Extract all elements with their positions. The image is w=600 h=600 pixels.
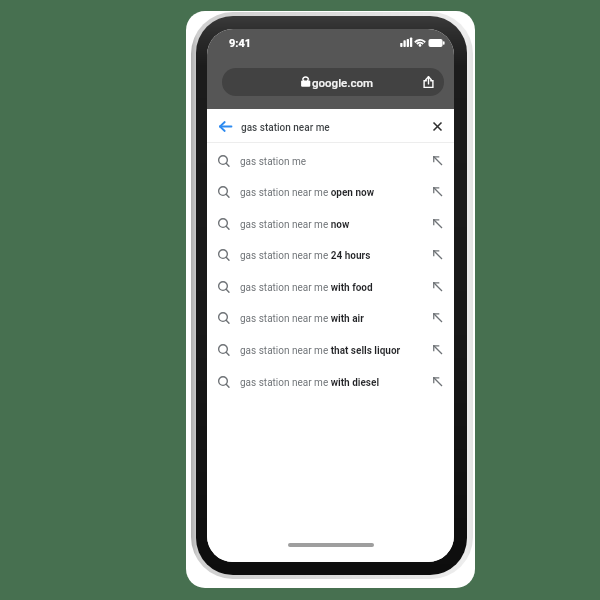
staticText: google.com: [312, 76, 374, 89]
staticText: gas station near me: [241, 122, 330, 134]
staticText: gas station near me 24 hours: [240, 250, 371, 262]
button[interactable]: gas station near me open now: [207, 175, 454, 207]
staticText: gas station near me that sells liquor: [240, 345, 401, 357]
staticText: gas station near me with food: [240, 282, 373, 294]
staticText: 9:41: [229, 37, 252, 50]
button[interactable]: Share: [418, 72, 438, 92]
button[interactable]: Clear: [426, 115, 448, 137]
staticText: gas station me: [240, 156, 307, 168]
button[interactable]: Back: [213, 114, 237, 138]
button[interactable]: google.com: [222, 68, 444, 96]
button[interactable]: gas station near me with diesel: [207, 365, 454, 397]
button[interactable]: gas station near me with air: [207, 301, 454, 333]
staticText: gas station near me open now: [240, 187, 375, 199]
button[interactable]: gas station near me 24 hours: [207, 238, 454, 270]
button[interactable]: gas station me: [207, 144, 454, 176]
button[interactable]: gas station near me now: [207, 207, 454, 239]
button[interactable]: gas station near me with food: [207, 270, 454, 302]
button[interactable]: gas station near me that sells liquor: [207, 333, 454, 365]
staticText: gas station near me with air: [240, 313, 364, 325]
staticText: gas station near me with diesel: [240, 377, 380, 389]
staticText: gas station near me now: [240, 219, 350, 231]
